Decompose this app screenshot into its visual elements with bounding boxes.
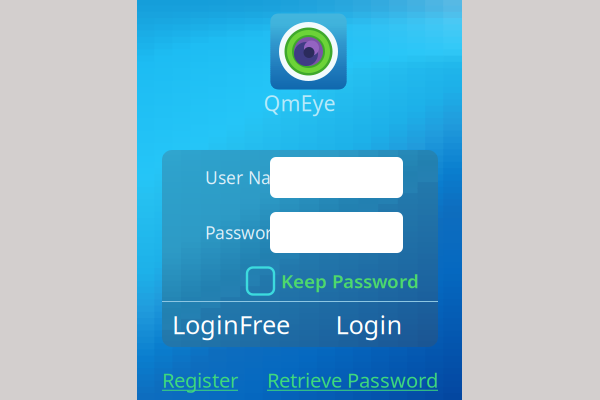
staticText: Keep Password bbox=[281, 269, 419, 293]
button[interactable]: Login bbox=[300, 302, 438, 347]
staticText: User Name: bbox=[205, 166, 302, 189]
staticText: Login bbox=[335, 308, 402, 341]
staticText: Password: bbox=[205, 221, 288, 244]
staticText: QmEye bbox=[263, 89, 335, 117]
button[interactable]: Register bbox=[162, 367, 238, 393]
staticText: Retrieve Password bbox=[267, 367, 438, 393]
button[interactable]: Retrieve Password bbox=[267, 367, 438, 393]
staticText: LoginFree bbox=[172, 308, 290, 341]
button[interactable]: LoginFree bbox=[162, 302, 300, 347]
staticText: Register bbox=[162, 367, 238, 393]
button[interactable]: Keep Password bbox=[247, 267, 423, 295]
